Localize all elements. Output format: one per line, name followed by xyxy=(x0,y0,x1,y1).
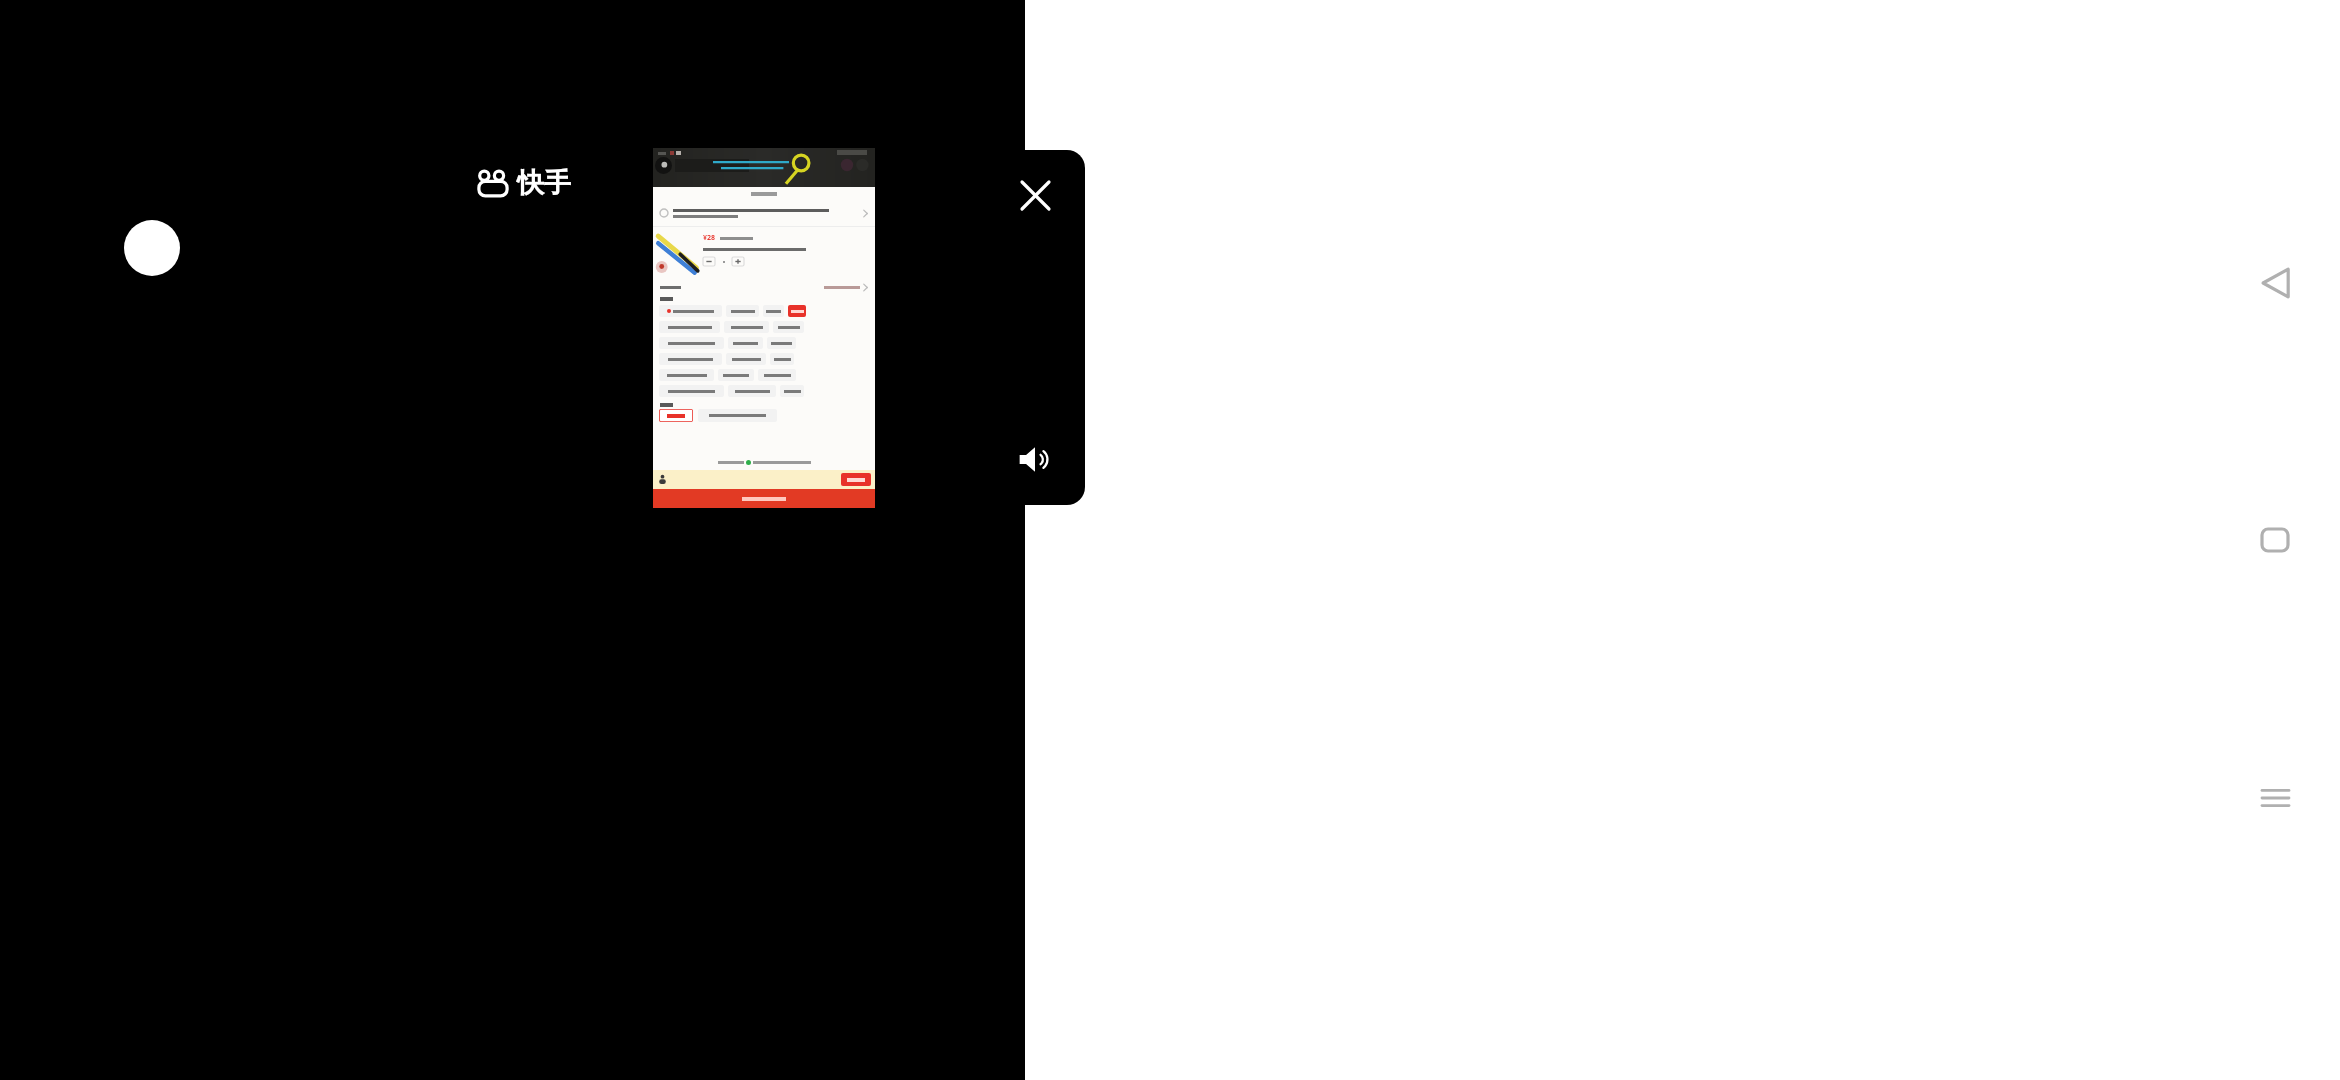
staticText: 快手 xyxy=(517,166,571,200)
button[interactable] xyxy=(659,337,724,349)
button[interactable] xyxy=(728,337,763,349)
button[interactable]: ¥28 xyxy=(653,227,875,279)
button[interactable]: ¥28 xyxy=(653,148,875,508)
button[interactable] xyxy=(728,385,776,397)
button[interactable] xyxy=(698,409,777,422)
staticText: ¥28 xyxy=(703,233,716,243)
button[interactable] xyxy=(726,305,759,317)
button[interactable] xyxy=(758,369,796,381)
button[interactable] xyxy=(659,369,714,381)
button[interactable] xyxy=(653,200,875,226)
button[interactable] xyxy=(763,305,784,317)
button[interactable] xyxy=(659,409,693,422)
button[interactable]: Back xyxy=(2243,251,2307,315)
button[interactable] xyxy=(660,279,868,295)
button[interactable] xyxy=(732,257,744,266)
button[interactable] xyxy=(659,385,724,397)
button[interactable] xyxy=(653,489,875,508)
button[interactable] xyxy=(659,353,722,365)
button[interactable] xyxy=(703,257,715,266)
button[interactable] xyxy=(724,321,769,333)
button[interactable] xyxy=(773,321,804,333)
button[interactable]: Volume xyxy=(1007,431,1063,487)
button[interactable]: Recent apps xyxy=(2243,766,2307,830)
button[interactable] xyxy=(788,305,806,317)
button[interactable] xyxy=(718,369,754,381)
button[interactable] xyxy=(659,321,720,333)
button[interactable] xyxy=(841,473,871,486)
button[interactable] xyxy=(726,353,766,365)
button[interactable]: Close xyxy=(1007,167,1063,223)
button[interactable] xyxy=(780,385,804,397)
button[interactable] xyxy=(770,353,794,365)
button[interactable] xyxy=(659,305,722,317)
button[interactable] xyxy=(767,337,796,349)
button[interactable]: Home xyxy=(2243,508,2307,572)
